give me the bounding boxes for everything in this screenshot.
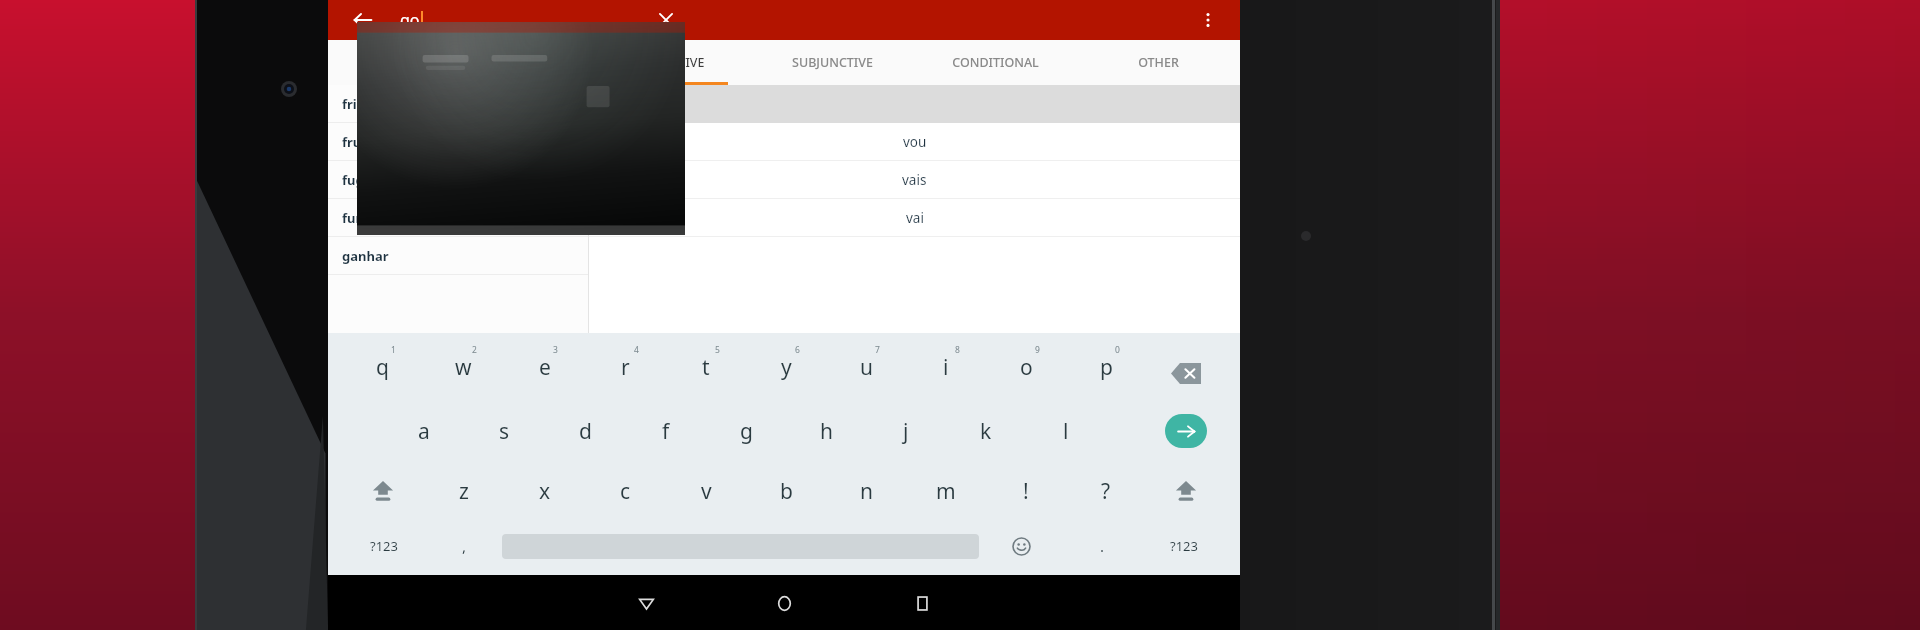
staticText: 9 [1035, 344, 1040, 356]
staticText: d [579, 417, 592, 446]
button[interactable]: Home [764, 583, 804, 623]
button[interactable]: Shift [1146, 461, 1226, 521]
staticText: i [943, 353, 949, 382]
staticText: p [1100, 353, 1113, 382]
button[interactable]: h [786, 401, 866, 461]
button[interactable]: ?123 [1141, 521, 1226, 571]
staticText: 2 [472, 344, 477, 356]
button[interactable]: SUBJUNCTIVE [751, 40, 914, 85]
button[interactable]: fumar [328, 199, 588, 237]
staticText: n [860, 477, 873, 506]
staticText: e [539, 353, 551, 382]
button[interactable]: 7 [826, 339, 906, 401]
button[interactable]: f [626, 401, 706, 461]
button[interactable]: 6 [746, 339, 826, 401]
button[interactable]: 3 [504, 339, 585, 401]
staticText: 6 [795, 344, 800, 356]
button[interactable]: CONDITIONAL [914, 40, 1077, 85]
button[interactable]: Back [626, 583, 666, 623]
staticText: y [781, 353, 792, 382]
staticText: t [702, 353, 710, 382]
button[interactable]: j [866, 401, 946, 461]
button[interactable]: x [504, 461, 585, 521]
staticText: ! [1023, 477, 1029, 506]
button[interactable]: Emoji [979, 521, 1064, 571]
button[interactable]: , [426, 521, 502, 571]
button[interactable]: ganhar [328, 237, 588, 275]
button[interactable]: Backspace [1146, 339, 1226, 401]
button[interactable]: ?123 [342, 521, 426, 571]
staticText: INDICATIVE [635, 54, 705, 71]
staticText: . [1100, 536, 1105, 556]
button[interactable]: s [464, 401, 545, 461]
button[interactable]: More options [1192, 4, 1224, 36]
staticText: ? [1101, 477, 1111, 506]
button[interactable]: tu [589, 161, 1240, 199]
button[interactable]: Space [502, 521, 979, 571]
button[interactable]: n [826, 461, 906, 521]
button[interactable]: Enter [1146, 401, 1226, 461]
staticText: m [936, 477, 956, 506]
button[interactable]: fugir [328, 161, 588, 199]
staticText: h [820, 417, 833, 446]
staticText: k [980, 417, 992, 446]
button[interactable]: fritar [328, 85, 588, 123]
button[interactable]: eu [589, 123, 1240, 161]
button[interactable]: ele [589, 199, 1240, 237]
button[interactable]: Back [348, 5, 378, 35]
button[interactable]: INDICATIVE [588, 40, 751, 85]
staticText: b [780, 477, 793, 506]
staticText: 0 [1115, 344, 1120, 356]
button[interactable]: l [1026, 401, 1106, 461]
staticText: 4 [634, 344, 639, 356]
button[interactable]: 2 [423, 339, 504, 401]
staticText: CONDITIONAL [952, 54, 1039, 71]
button[interactable]: m [906, 461, 986, 521]
staticText: g [740, 417, 753, 446]
staticText: l [1063, 417, 1069, 446]
staticText: v [701, 477, 712, 506]
staticText: vais [902, 171, 927, 189]
button[interactable]: a [383, 401, 464, 461]
button[interactable]: frustrar [328, 123, 588, 161]
staticText: o [1020, 353, 1033, 382]
staticText: ?123 [1170, 537, 1198, 555]
staticText: q [376, 353, 389, 382]
button[interactable]: z [423, 461, 504, 521]
button[interactable]: ! [986, 461, 1066, 521]
button[interactable]: k [946, 401, 1026, 461]
staticText: s [499, 417, 510, 446]
staticText: vou [903, 133, 927, 151]
button[interactable]: 4 [585, 339, 666, 401]
button[interactable]: 9 [986, 339, 1066, 401]
staticText: OTHER [1138, 54, 1179, 71]
button[interactable]: 1 [342, 339, 423, 401]
button[interactable]: 0 [1066, 339, 1146, 401]
button[interactable]: ? [1066, 461, 1146, 521]
button[interactable]: Recent apps [902, 583, 942, 623]
staticText: u [860, 353, 873, 382]
button[interactable]: go [400, 3, 423, 37]
button[interactable]: g [706, 401, 786, 461]
button[interactable]: v [666, 461, 746, 521]
staticText: go [400, 9, 420, 31]
staticText: w [455, 353, 472, 382]
button[interactable]: Clear search [650, 4, 682, 36]
staticText: x [539, 477, 551, 506]
staticText: , [462, 536, 467, 556]
staticText: ?123 [370, 537, 398, 555]
button[interactable]: d [545, 401, 626, 461]
staticText: fritar [342, 95, 376, 113]
staticText: f [662, 417, 670, 446]
button[interactable]: b [746, 461, 826, 521]
button[interactable]: . [1064, 521, 1141, 571]
button[interactable]: 8 [906, 339, 986, 401]
button[interactable]: Shift [342, 461, 423, 521]
staticText: 8 [955, 344, 960, 356]
button[interactable]: OTHER [1077, 40, 1240, 85]
button[interactable]: c [585, 461, 666, 521]
staticText: z [459, 477, 469, 506]
button[interactable]: 5 [666, 339, 746, 401]
